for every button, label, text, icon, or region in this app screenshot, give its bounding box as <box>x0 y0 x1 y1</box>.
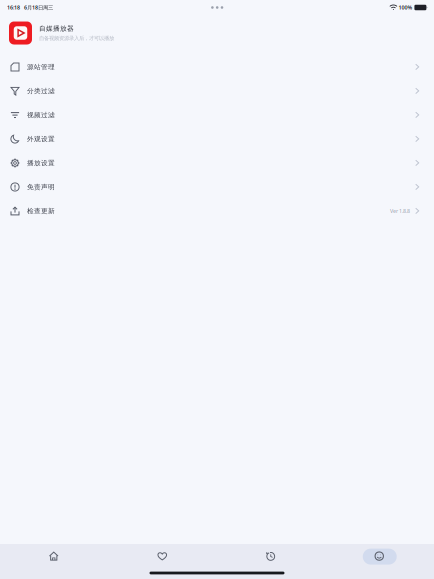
button[interactable]: 免责声明 <box>0 175 434 199</box>
staticText: 分类过滤 <box>27 87 55 95</box>
staticText: Ver 1.8.8 <box>390 207 410 215</box>
button[interactable]: 外观设置 <box>0 127 434 151</box>
button[interactable]: 自媒播放器 <box>0 18 434 48</box>
button[interactable]: 检查更新 <box>0 199 434 223</box>
button[interactable]: 视频过滤 <box>0 103 434 127</box>
staticText: 16:18 <box>7 4 20 11</box>
staticText: 源站管理 <box>27 63 55 71</box>
button[interactable]: History <box>217 548 325 566</box>
staticText: 视频过滤 <box>27 111 55 119</box>
staticText: 外观设置 <box>27 135 55 143</box>
staticText: 6月18日周三 <box>24 4 53 11</box>
staticText: 播放设置 <box>27 159 55 167</box>
button[interactable]: 播放设置 <box>0 151 434 175</box>
button[interactable]: Favorites <box>108 548 217 566</box>
staticText: 自媒播放器 <box>39 24 74 33</box>
staticText: 100% <box>398 4 412 11</box>
button[interactable]: 分类过滤 <box>0 79 434 103</box>
button[interactable]: Home <box>0 548 108 566</box>
button[interactable]: Profile <box>325 548 434 566</box>
staticText: 自备视频资源录入后，才可以播放 <box>39 35 114 42</box>
staticText: 免责声明 <box>27 183 55 191</box>
staticText: 检查更新 <box>27 207 55 215</box>
button[interactable]: 源站管理 <box>0 55 434 79</box>
